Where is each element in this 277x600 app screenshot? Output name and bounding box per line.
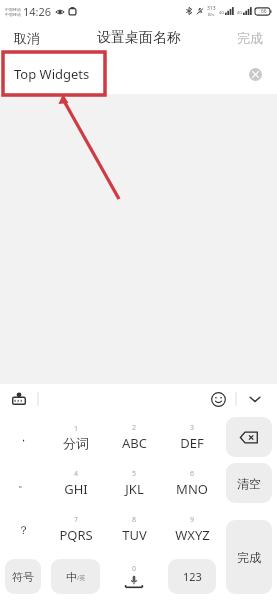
button[interactable]: 完成: [223, 24, 277, 52]
button[interactable]: Clear text: [245, 64, 265, 84]
button[interactable]: 1: [46, 414, 105, 460]
staticText: ，: [18, 430, 29, 444]
staticText: 9: [190, 515, 195, 525]
staticText: 完成: [237, 30, 263, 46]
button[interactable]: 符号: [5, 559, 41, 594]
button[interactable]: Voice input / space: [105, 553, 163, 600]
staticText: 中: [66, 570, 77, 584]
staticText: Top Widgets: [14, 65, 90, 83]
button[interactable]: 5: [105, 460, 163, 506]
staticText: 3: [190, 423, 195, 433]
staticText: 4G: [219, 10, 225, 15]
staticText: 设置桌面名称: [97, 29, 181, 47]
staticText: 中国移动: [5, 12, 21, 17]
staticText: JKL: [125, 480, 144, 498]
button[interactable]: 4: [46, 460, 105, 506]
staticText: 分词: [63, 435, 89, 451]
button[interactable]: ？: [0, 506, 46, 553]
staticText: 符号: [12, 570, 34, 584]
button[interactable]: 123: [168, 559, 216, 594]
button[interactable]: Emoji: [206, 387, 230, 411]
button[interactable]: 8: [105, 506, 163, 553]
button[interactable]: 3: [163, 414, 221, 460]
staticText: PQRS: [59, 526, 93, 544]
staticText: MNO: [176, 480, 208, 498]
button[interactable]: ，: [0, 414, 46, 460]
button[interactable]: Hide keyboard: [243, 387, 267, 411]
staticText: 1: [74, 424, 79, 434]
button[interactable]: Backspace: [226, 417, 272, 457]
staticText: 66: [261, 8, 267, 15]
staticText: GHI: [64, 480, 88, 498]
staticText: 中国移动: [5, 7, 21, 12]
button[interactable]: 。: [0, 460, 46, 506]
staticText: 7: [74, 515, 79, 525]
staticText: 2: [132, 423, 137, 433]
staticText: 313: [207, 5, 216, 12]
staticText: 123: [183, 569, 202, 584]
staticText: /英: [77, 574, 86, 582]
staticText: DEF: [180, 434, 204, 452]
staticText: 取消: [14, 30, 40, 46]
staticText: ？: [18, 523, 29, 537]
button[interactable]: Input method settings: [8, 388, 30, 410]
staticText: B/s: [208, 12, 215, 17]
button[interactable]: 清空: [226, 463, 272, 503]
button[interactable]: 完成: [226, 520, 272, 594]
button[interactable]: 2: [105, 414, 163, 460]
staticText: 。: [18, 476, 29, 490]
button[interactable]: 6: [163, 460, 221, 506]
staticText: 清空: [237, 476, 261, 491]
staticText: 4G: [237, 10, 243, 15]
staticText: 0: [132, 564, 137, 574]
staticText: 6: [190, 469, 195, 479]
button[interactable]: 9: [163, 506, 221, 553]
staticText: 完成: [237, 550, 261, 565]
button[interactable]: 取消: [0, 24, 54, 52]
staticText: 14:26: [23, 4, 52, 19]
staticText: TUV: [122, 526, 147, 544]
staticText: 5: [132, 469, 137, 479]
staticText: 8: [132, 515, 137, 525]
button[interactable]: 中: [51, 559, 100, 594]
button[interactable]: 7: [46, 506, 105, 553]
staticText: 4: [74, 469, 79, 479]
staticText: ABC: [122, 434, 147, 452]
staticText: WXYZ: [175, 526, 210, 544]
